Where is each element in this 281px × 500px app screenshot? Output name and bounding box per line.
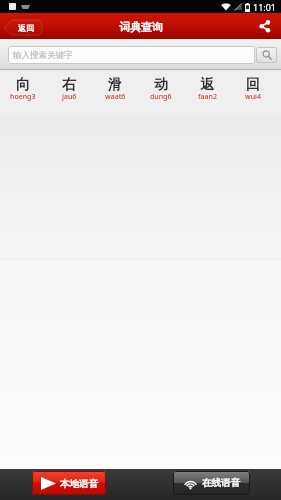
- staticText: jau6: [62, 92, 77, 102]
- button[interactable]: 回: [230, 70, 276, 115]
- button[interactable]: 向: [0, 70, 46, 115]
- staticText: 回: [246, 76, 260, 94]
- staticText: waat6: [105, 92, 126, 102]
- staticText: 本地语音: [60, 478, 98, 490]
- staticText: dung6: [150, 92, 172, 102]
- staticText: 向: [16, 76, 30, 94]
- staticText: 动: [154, 76, 168, 94]
- button[interactable]: 右: [46, 70, 92, 115]
- button[interactable]: 搜索: [256, 47, 277, 63]
- staticText: 11:01: [253, 1, 277, 13]
- staticText: 返回: [18, 23, 34, 33]
- staticText: 输入搜索关键字: [13, 50, 73, 61]
- staticText: wui4: [245, 92, 261, 102]
- button[interactable]: 输入搜索关键字: [8, 46, 255, 64]
- button[interactable]: 在线语音: [173, 471, 250, 495]
- button[interactable]: 返回: [4, 20, 42, 35]
- staticText: 右: [62, 76, 76, 94]
- staticText: faan2: [198, 92, 217, 102]
- button[interactable]: 动: [138, 70, 184, 115]
- staticText: 返: [200, 76, 214, 94]
- staticText: hoeng3: [10, 92, 36, 102]
- button[interactable]: 滑: [92, 70, 138, 115]
- staticText: 在线语音: [202, 477, 240, 489]
- button[interactable]: 分享: [256, 17, 274, 35]
- button[interactable]: 本地语音: [32, 471, 106, 495]
- staticText: 滑: [108, 76, 122, 94]
- button[interactable]: 返: [184, 70, 230, 115]
- staticText: 词典查询: [119, 20, 163, 34]
